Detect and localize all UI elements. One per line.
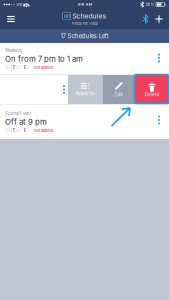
staticText: Edit [114,91,123,97]
staticText: Apply to [75,90,94,96]
staticText: S [5,65,8,70]
staticText: F [24,128,26,133]
staticText: Off at 9 pm [5,117,47,127]
staticText: W [16,128,20,133]
staticText: M [8,65,12,70]
staticText: S [27,128,30,133]
button[interactable]: More options [152,50,166,66]
staticText: M [8,128,12,133]
staticText: T [20,128,23,133]
staticText: T [12,65,15,70]
staticText: Not applied [34,128,53,133]
button[interactable]: More options [152,112,166,128]
staticText: T [12,128,15,133]
button[interactable]: Special Event [0,105,169,139]
button[interactable]: Menu [3,9,19,29]
button[interactable]: More options [60,75,68,104]
staticText: S [5,128,8,133]
staticText: Special Event [5,111,31,116]
button[interactable]: Bluetooth [139,9,152,29]
staticText: S [27,65,30,70]
button[interactable]: Edit [102,75,135,104]
button[interactable]: Delete [135,75,169,104]
staticText: 9:41 AM [78,2,92,7]
button[interactable]: Weekday [0,43,169,75]
staticText: T [20,65,23,70]
staticText: F [24,65,26,70]
staticText: on [64,13,70,20]
button[interactable]: Add schedule [152,9,166,29]
staticText: 17 Schedules Left [60,32,108,40]
staticText: On from 7 pm to 1 am [5,54,83,64]
staticText: Delete [144,91,159,97]
staticText: Press For Help [71,21,97,26]
staticText: 58 % [146,2,155,7]
staticText: W [16,65,20,70]
staticText: Schedules [72,12,106,20]
staticText: GS [16,2,22,7]
staticText: Weekday [5,48,22,53]
button[interactable]: Apply to [68,75,102,104]
staticText: Not applied [34,65,53,70]
